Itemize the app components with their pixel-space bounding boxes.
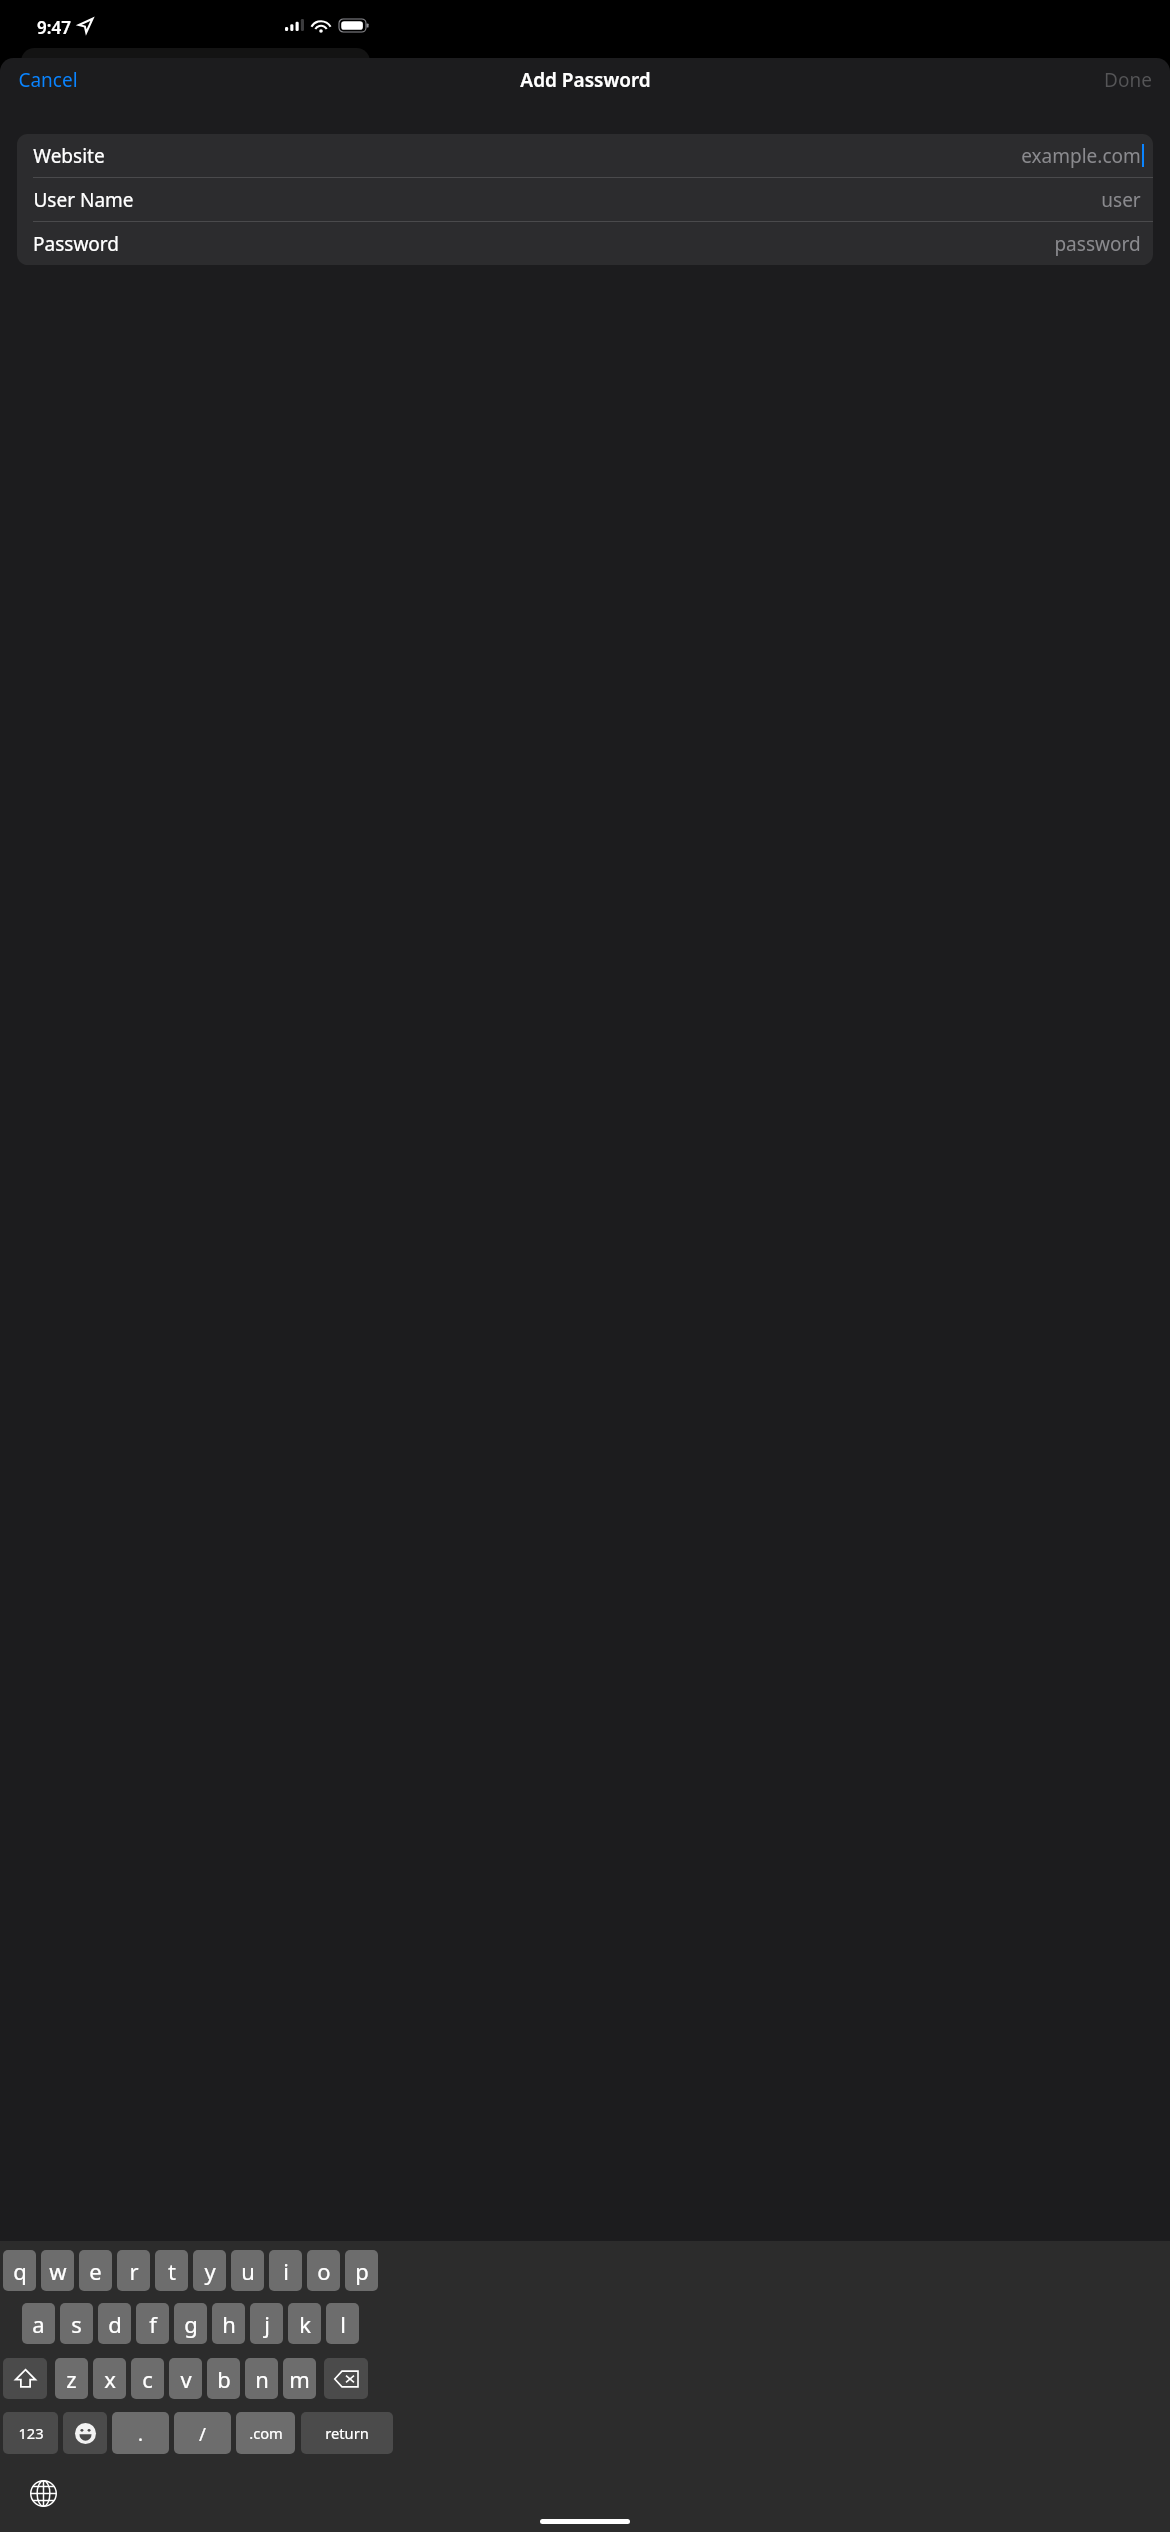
- staticText: z: [66, 2364, 77, 2394]
- staticText: j: [264, 2309, 270, 2339]
- staticText: Done: [1104, 67, 1152, 93]
- staticText: Password: [33, 231, 119, 257]
- staticText: h: [222, 2309, 236, 2339]
- staticText: .: [138, 2421, 143, 2446]
- staticText: example.com: [1021, 143, 1141, 169]
- button[interactable]: l: [326, 2303, 359, 2344]
- button[interactable]: Shift: [3, 2358, 47, 2399]
- button[interactable]: return: [301, 2412, 393, 2454]
- button[interactable]: v: [169, 2358, 202, 2399]
- staticText: f: [149, 2309, 157, 2339]
- button[interactable]: c: [131, 2358, 164, 2399]
- staticText: Website: [33, 143, 105, 169]
- button[interactable]: r: [117, 2250, 150, 2291]
- button[interactable]: n: [245, 2358, 278, 2399]
- button[interactable]: s: [60, 2303, 93, 2344]
- staticText: s: [71, 2309, 82, 2339]
- button[interactable]: Done: [1091, 60, 1165, 100]
- staticText: u: [241, 2256, 255, 2286]
- button[interactable]: z: [55, 2358, 88, 2399]
- button[interactable]: u: [231, 2250, 264, 2291]
- button[interactable]: Backspace: [324, 2358, 368, 2399]
- staticText: l: [340, 2309, 346, 2339]
- staticText: e: [89, 2256, 102, 2286]
- staticText: d: [108, 2309, 122, 2339]
- staticText: o: [317, 2256, 331, 2286]
- button[interactable]: y: [193, 2250, 226, 2291]
- staticText: m: [289, 2364, 310, 2394]
- staticText: User Name: [33, 187, 134, 213]
- staticText: .com: [249, 2423, 283, 2443]
- staticText: user: [1101, 187, 1141, 213]
- staticText: r: [129, 2256, 139, 2286]
- button[interactable]: .com: [236, 2412, 295, 2454]
- button[interactable]: k: [288, 2303, 321, 2344]
- staticText: n: [255, 2364, 269, 2394]
- staticText: /: [199, 2421, 206, 2446]
- button[interactable]: i: [269, 2250, 302, 2291]
- staticText: return: [325, 2423, 369, 2443]
- staticText: 123: [18, 2423, 44, 2443]
- staticText: 9:47: [37, 16, 71, 39]
- staticText: Add Password: [520, 67, 651, 93]
- button[interactable]: p: [345, 2250, 378, 2291]
- staticText: a: [32, 2309, 45, 2339]
- button[interactable]: Password: [17, 222, 1153, 265]
- staticText: i: [283, 2256, 289, 2286]
- staticText: v: [180, 2364, 192, 2394]
- button[interactable]: b: [207, 2358, 240, 2399]
- staticText: c: [142, 2364, 153, 2394]
- staticText: q: [13, 2256, 27, 2286]
- button[interactable]: 123: [3, 2412, 58, 2454]
- staticText: password: [1054, 231, 1141, 257]
- staticText: w: [49, 2256, 67, 2286]
- button[interactable]: User Name: [17, 178, 1153, 221]
- button[interactable]: .: [112, 2412, 169, 2454]
- button[interactable]: e: [79, 2250, 112, 2291]
- button[interactable]: o: [307, 2250, 340, 2291]
- button[interactable]: f: [136, 2303, 169, 2344]
- staticText: g: [184, 2309, 198, 2339]
- button[interactable]: d: [98, 2303, 131, 2344]
- staticText: y: [204, 2256, 216, 2286]
- button[interactable]: t: [155, 2250, 188, 2291]
- staticText: x: [104, 2364, 116, 2394]
- button[interactable]: Website: [17, 134, 1153, 177]
- button[interactable]: /: [174, 2412, 231, 2454]
- button[interactable]: Change keyboard: [30, 2480, 57, 2507]
- staticText: b: [217, 2364, 231, 2394]
- button[interactable]: j: [250, 2303, 283, 2344]
- button[interactable]: a: [22, 2303, 55, 2344]
- button[interactable]: Emoji: [63, 2412, 107, 2454]
- button[interactable]: g: [174, 2303, 207, 2344]
- button[interactable]: q: [3, 2250, 36, 2291]
- button[interactable]: h: [212, 2303, 245, 2344]
- staticText: k: [299, 2309, 311, 2339]
- button[interactable]: m: [283, 2358, 316, 2399]
- staticText: t: [168, 2256, 176, 2286]
- staticText: p: [355, 2256, 369, 2286]
- button[interactable]: x: [93, 2358, 126, 2399]
- button[interactable]: Cancel: [5, 60, 91, 100]
- staticText: Cancel: [18, 67, 78, 93]
- button[interactable]: w: [41, 2250, 74, 2291]
